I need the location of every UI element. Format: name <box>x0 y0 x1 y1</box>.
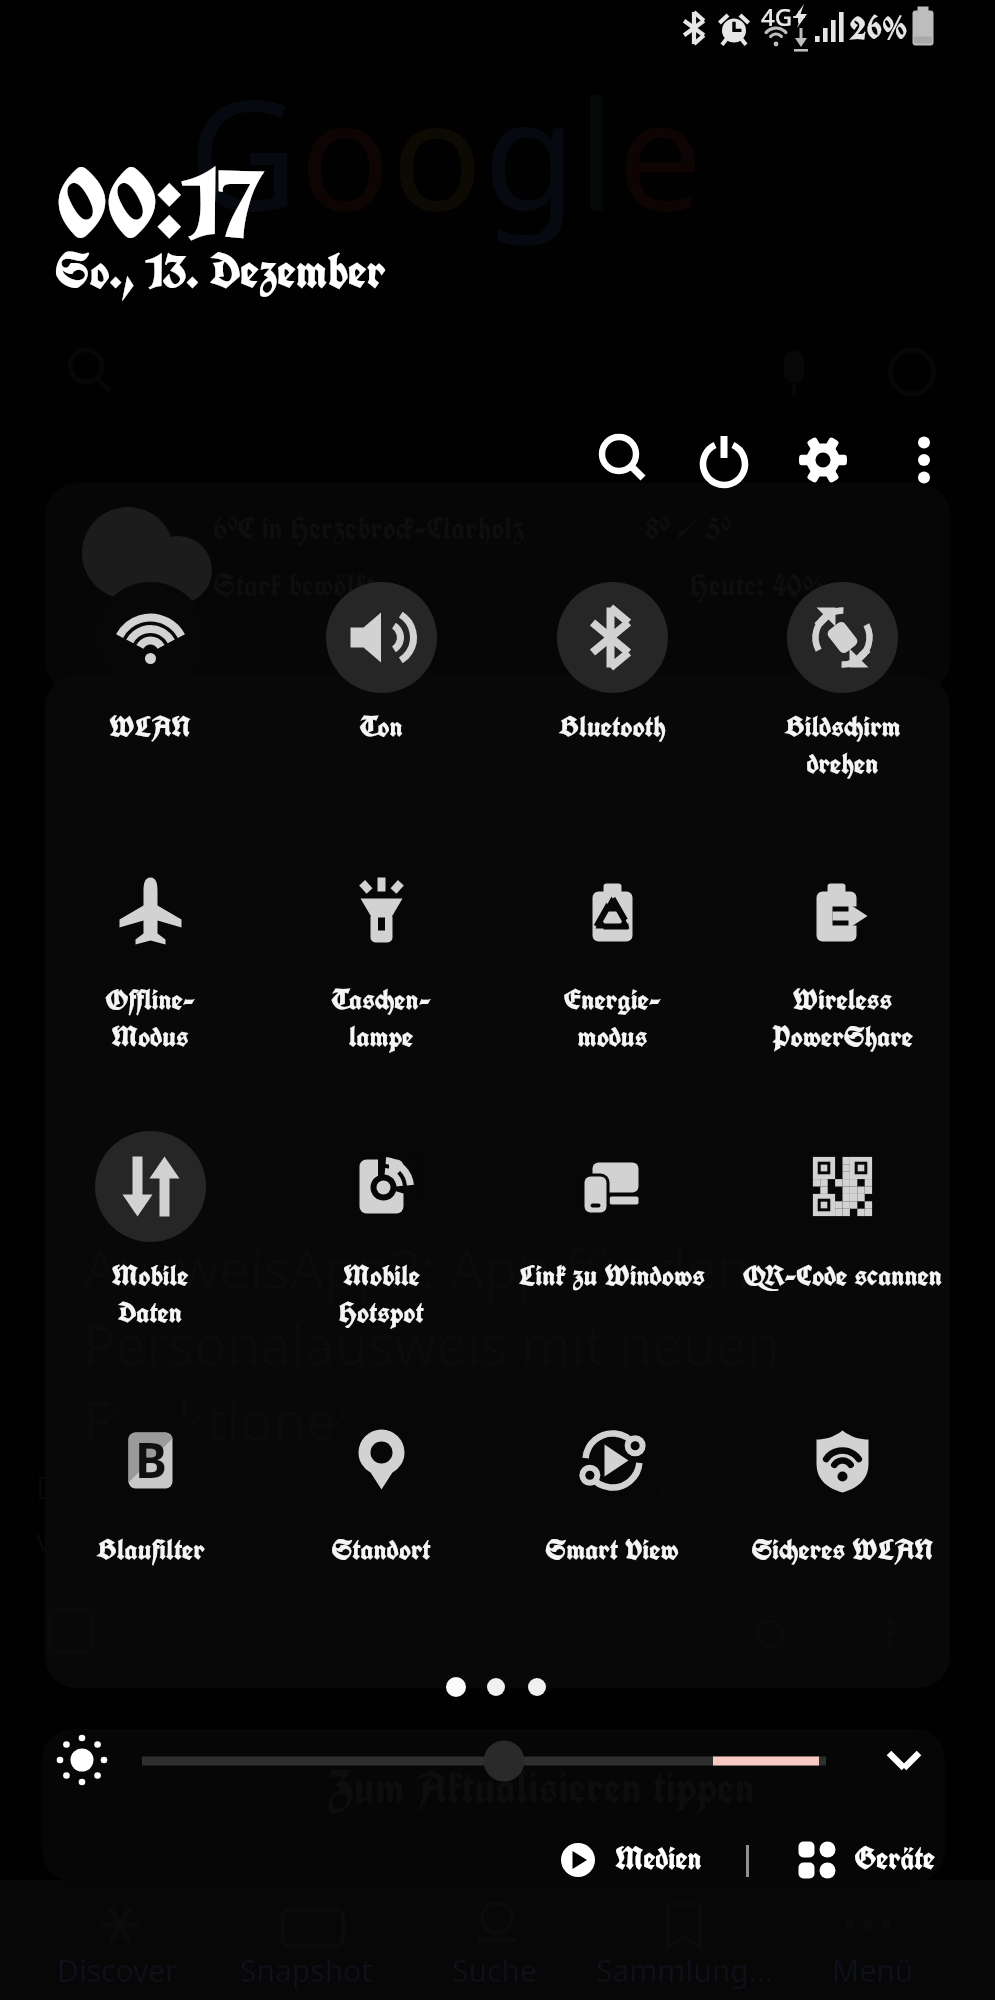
staticText: Sammlung... <box>596 1950 773 1991</box>
button[interactable]: Taschen- lampe <box>267 855 495 1055</box>
staticText: G <box>188 48 299 255</box>
staticText: o <box>391 48 483 255</box>
button[interactable]: Medien <box>552 1834 702 1886</box>
staticText: B <box>135 1427 167 1492</box>
button[interactable]: Smart View <box>498 1405 726 1568</box>
button[interactable]: Offline- Modus <box>36 855 264 1055</box>
button[interactable]: B <box>36 1405 264 1568</box>
staticText: Blaufilter <box>96 1530 205 1568</box>
staticText: Discover <box>57 1950 178 1991</box>
staticText: Heute: 40% <box>690 565 827 606</box>
staticText: Medien <box>615 1838 702 1879</box>
button[interactable]: Mobile Hotspot <box>267 1131 495 1331</box>
button[interactable]: Wireless PowerShare <box>728 855 956 1055</box>
button[interactable]: QR-Code scannen <box>728 1131 956 1294</box>
staticText: So., 13. Dezember <box>55 240 386 303</box>
button[interactable]: Bluetooth <box>498 582 726 745</box>
staticText: Bluetooth <box>558 707 666 745</box>
button[interactable]: Power off <box>679 415 769 505</box>
button[interactable]: Standort <box>267 1405 495 1568</box>
staticText: Mobile Hotspot <box>339 1256 424 1331</box>
staticText: Suche <box>452 1950 537 1991</box>
staticText: Smart View <box>545 1530 679 1568</box>
staticText: WLAN <box>109 707 191 745</box>
button[interactable]: Ton <box>267 582 495 745</box>
staticText: Mobile Daten <box>111 1256 189 1331</box>
button[interactable]: WLAN <box>36 582 264 745</box>
button[interactable]: Bildschirm drehen <box>728 582 956 782</box>
staticText: Die jüngsten Updates auf Version 2.0 zie… <box>36 1466 731 1560</box>
button[interactable]: Mobile Daten <box>36 1131 264 1331</box>
staticText: 26% <box>849 6 908 49</box>
button[interactable]: Brightness slider <box>138 1731 830 1791</box>
button[interactable]: Expand quick settings <box>868 1724 940 1796</box>
staticText: 00:17 <box>57 138 265 268</box>
staticText: l <box>577 48 617 255</box>
button[interactable]: Geräte <box>791 1834 936 1886</box>
staticText: Wireless PowerShare <box>772 980 913 1055</box>
staticText: Standort <box>331 1530 431 1568</box>
staticText: Taschen- lampe <box>331 980 431 1055</box>
button[interactable]: More options <box>879 415 969 505</box>
staticText: Bildschirm drehen <box>784 707 901 782</box>
staticText: g <box>483 48 577 255</box>
staticText: Geräte <box>854 1838 936 1879</box>
button[interactable]: Auto brightness <box>46 1724 118 1796</box>
staticText: AusweisApp2: App für den Personalausweis… <box>83 1231 780 1456</box>
button[interactable]: Sicheres WLAN <box>728 1405 956 1568</box>
staticText: Ton <box>359 707 403 745</box>
staticText: QR-Code scannen <box>743 1256 942 1294</box>
button[interactable]: Search <box>579 415 669 505</box>
staticText: e <box>617 48 703 255</box>
staticText: Menü <box>832 1950 914 1991</box>
staticText: Snapshot <box>240 1950 373 1991</box>
staticText: Link zu Windows <box>519 1256 705 1294</box>
staticText: Stark bewölkt <box>213 565 375 606</box>
staticText: Energie- modus <box>564 980 661 1055</box>
staticText: Offline- Modus <box>105 980 195 1055</box>
staticText: Zum Aktualisieren tippen <box>327 1758 756 1817</box>
staticText: 4G+ <box>761 0 806 33</box>
button[interactable]: Settings <box>778 415 868 505</box>
button[interactable]: Energie- modus <box>498 855 726 1055</box>
button[interactable]: Link zu Windows <box>498 1131 726 1294</box>
staticText: o <box>299 48 391 255</box>
staticText: Sicheres WLAN <box>751 1530 934 1568</box>
